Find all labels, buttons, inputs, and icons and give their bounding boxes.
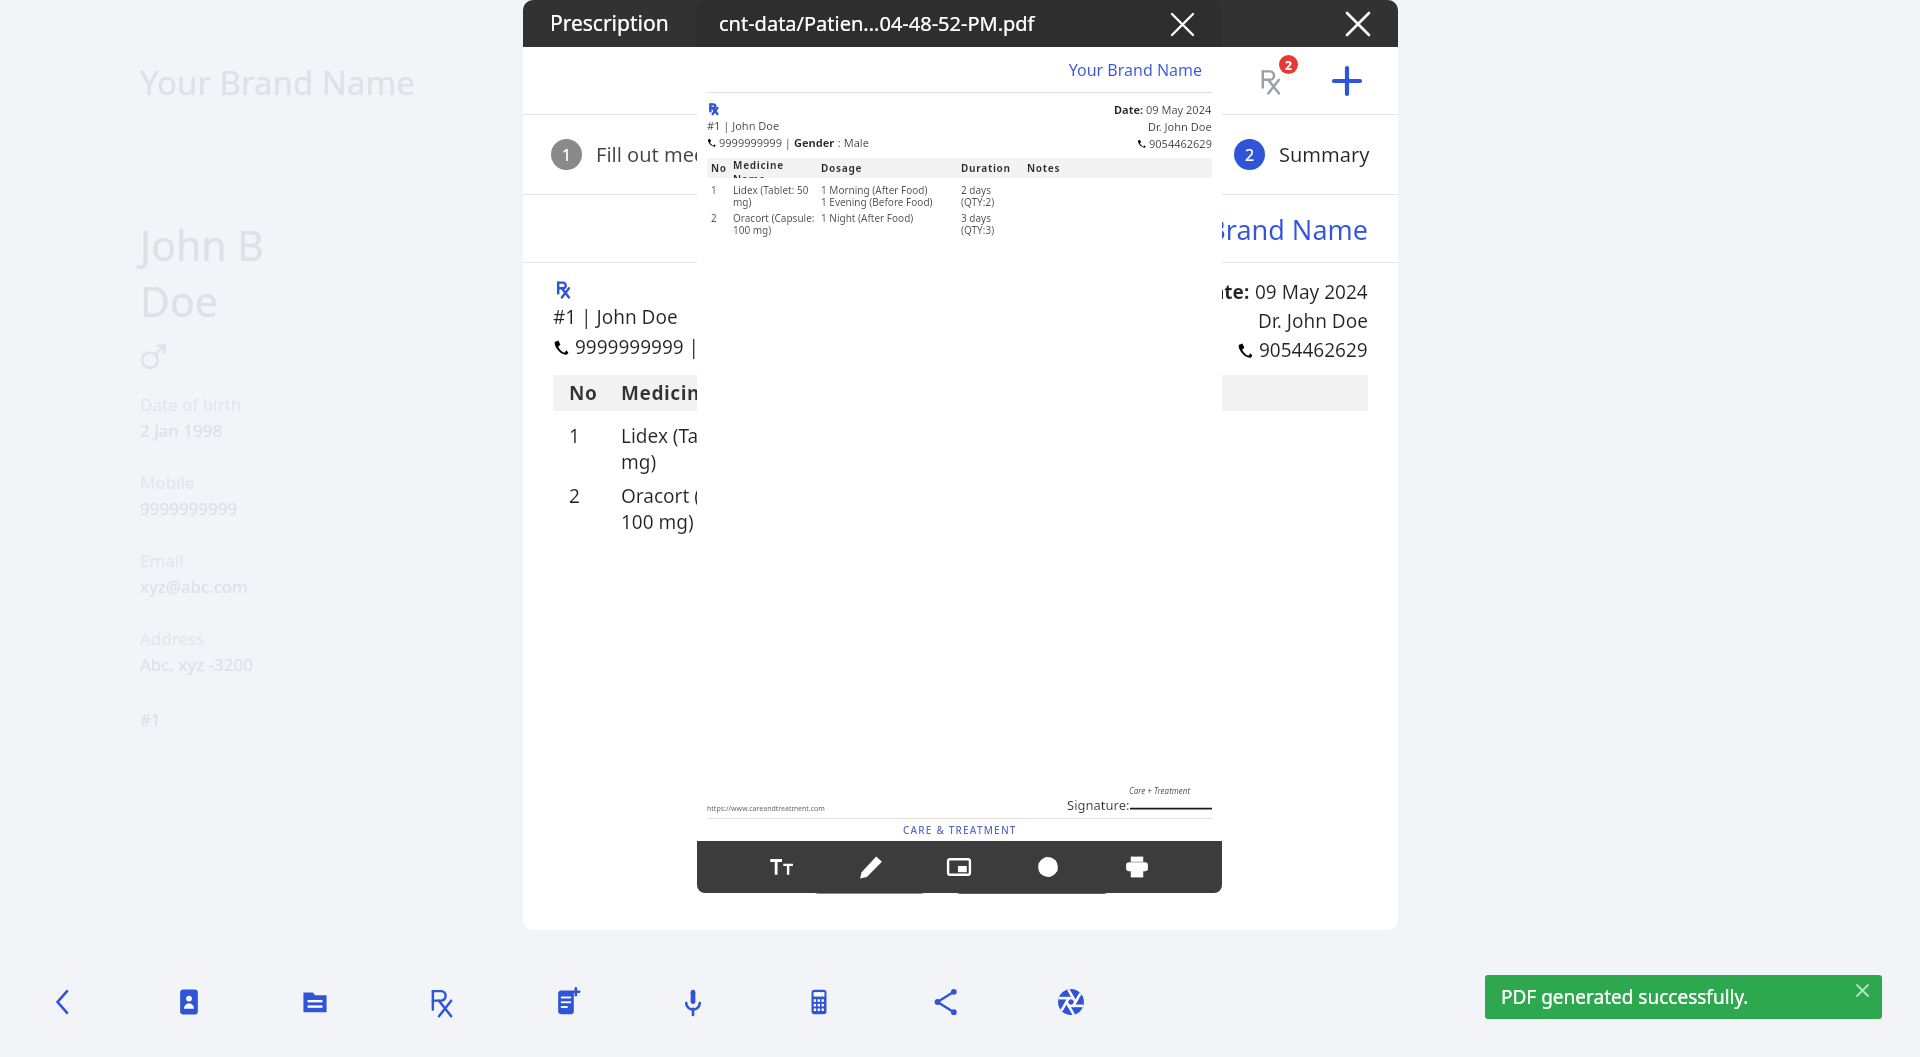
staticText: Dr. John Doe xyxy=(1148,119,1212,134)
staticText: Oracort (Capsule: 100 mg) xyxy=(621,483,776,535)
staticText: Medicine Name xyxy=(621,380,777,406)
button[interactable]: Dismiss notification xyxy=(1852,980,1872,1000)
staticText: Address xyxy=(140,627,205,650)
button[interactable]: Patients xyxy=(162,975,216,1029)
button[interactable]: PDF generated successfully. xyxy=(1485,975,1882,1019)
staticText: Your Brand Name xyxy=(707,59,1202,81)
staticText: Signature: xyxy=(1067,796,1130,814)
staticText: 1 Night (After Food) xyxy=(821,211,914,225)
button[interactable] xyxy=(813,855,926,894)
staticText: cnt-data/Patien...04-48-52-PM.pdf xyxy=(719,10,1035,37)
staticText: PDF generated successfully. xyxy=(1501,984,1749,1010)
staticText: 9054462629 xyxy=(1259,337,1368,363)
staticText: 09 May 2024 xyxy=(1255,279,1368,305)
staticText: Doe xyxy=(140,273,218,329)
button[interactable]: 1 xyxy=(551,139,817,170)
staticText: Care + Treatment xyxy=(1129,785,1191,796)
staticText: No xyxy=(569,380,598,406)
staticText: 2 xyxy=(1245,144,1255,166)
button[interactable]: Records xyxy=(288,975,342,1029)
staticText: 2 xyxy=(569,483,580,509)
staticText: 2 days (QTY:2) xyxy=(961,183,995,209)
staticText: 2 xyxy=(711,211,717,225)
button[interactable]: Prescription xyxy=(414,975,468,1029)
staticText: Your Brand Name xyxy=(553,211,1368,248)
staticText: 3 days (QTY:3) xyxy=(961,211,995,237)
button[interactable]: Text size xyxy=(760,845,804,889)
staticText: #1 | John Doe xyxy=(707,118,780,133)
staticText: : Male xyxy=(835,135,869,150)
staticText: Prescription xyxy=(550,9,669,38)
staticText: Date of birth xyxy=(140,393,242,416)
staticText: 2 Jan 1998 xyxy=(140,419,223,442)
staticText: xyz@abc.com xyxy=(140,575,248,598)
staticText: Oracort (Capsule: 100 mg) xyxy=(733,211,815,237)
button[interactable]: Back xyxy=(36,975,90,1029)
staticText: 9999999999 | xyxy=(575,334,705,360)
button[interactable]: Add xyxy=(1324,58,1370,104)
staticText: 9054462629 xyxy=(1149,136,1212,151)
button[interactable]: Print xyxy=(1115,845,1159,889)
button[interactable]: Share xyxy=(918,975,972,1029)
staticText: Gender xyxy=(794,135,835,150)
button[interactable]: Draw xyxy=(849,845,893,889)
button[interactable]: Prescriptions (2) xyxy=(1246,57,1294,105)
staticText: Duration xyxy=(961,161,1011,175)
staticText: Fill out medicine details xyxy=(596,141,817,168)
staticText: Mobile xyxy=(140,471,195,494)
staticText: John B xyxy=(140,217,264,273)
button[interactable]: Snapshot xyxy=(1026,845,1070,889)
staticText: 1 xyxy=(562,144,572,166)
button[interactable]: Layout xyxy=(937,845,981,889)
button[interactable] xyxy=(955,855,1109,894)
staticText: Date: xyxy=(1114,102,1146,117)
staticText: #1 xyxy=(140,708,161,731)
staticText: CARE & TREATMENT xyxy=(903,823,1017,837)
staticText: 9999999999 xyxy=(140,497,238,520)
staticText: 1 xyxy=(569,423,580,449)
button[interactable]: New note xyxy=(540,975,594,1029)
staticText: 9999999999 | xyxy=(719,135,794,150)
staticText: Abc, xyz -3200 xyxy=(140,653,253,676)
staticText: Email xyxy=(140,549,184,572)
button[interactable]: Close PDF viewer xyxy=(1162,4,1202,44)
staticText: 1 xyxy=(711,183,717,197)
staticText: Summary xyxy=(1279,141,1370,168)
button[interactable]: Voice xyxy=(666,975,720,1029)
staticText: https://www.careandtreatment.com xyxy=(707,804,825,814)
staticText: Your Brand Name xyxy=(140,60,415,105)
staticText: Lidex (Tablet: 50 mg) xyxy=(621,423,765,475)
button[interactable]: Camera xyxy=(1044,975,1098,1029)
button[interactable]: Close Prescription xyxy=(1338,4,1378,44)
staticText: Date: xyxy=(1199,279,1255,305)
staticText: #1 | John Doe xyxy=(553,304,678,330)
staticText: 09 May 2024 xyxy=(1146,102,1212,117)
staticText: 1 Morning (After Food) 1 Evening (Before… xyxy=(821,183,933,209)
staticText: No xyxy=(711,161,727,175)
button[interactable]: Calculator xyxy=(792,975,846,1029)
staticText: Lidex (Tablet: 50 mg) xyxy=(733,183,809,209)
staticText: Dr. John Doe xyxy=(1258,308,1368,334)
staticText: 2 xyxy=(1285,57,1292,73)
staticText: Dosage xyxy=(821,161,863,175)
button[interactable]: 2 xyxy=(1234,139,1370,170)
staticText: Notes xyxy=(1027,161,1061,175)
staticText: Medicine Name xyxy=(733,158,817,178)
